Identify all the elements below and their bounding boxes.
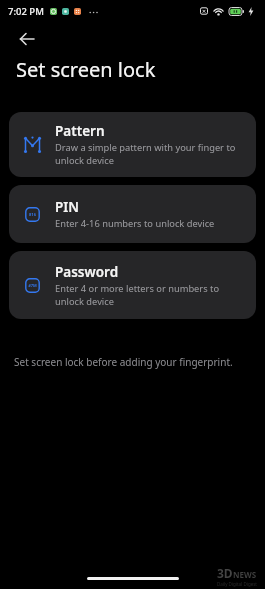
staticText: Draw a simple pattern with your finger t…: [55, 141, 236, 167]
staticText: PIN: [55, 198, 80, 216]
staticText: Daily Digital Digest: [217, 581, 257, 587]
staticText: Set screen lock before adding your finge…: [14, 355, 233, 369]
staticText: 816: [29, 212, 36, 217]
button[interactable]: 816: [9, 185, 256, 243]
staticText: 3D: [217, 565, 233, 581]
button[interactable]: #7M: [9, 251, 256, 319]
staticText: Password: [55, 263, 119, 281]
staticText: NEWS: [233, 569, 257, 580]
button[interactable]: [14, 26, 40, 52]
staticText: Set screen lock: [16, 56, 156, 83]
staticText: Enter 4-16 numbers to unlock device: [55, 217, 215, 230]
staticText: 7:02 PM: [8, 5, 44, 18]
staticText: #7M: [28, 283, 37, 288]
staticText: Enter 4 or more letters or numbers to un…: [55, 282, 220, 308]
button[interactable]: Pattern: [9, 112, 256, 177]
staticText: Pattern: [55, 122, 105, 140]
